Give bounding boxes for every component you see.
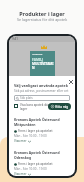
- staticText: APOTEKET: [32, 53, 43, 56]
- button[interactable]: Stäng: [67, 78, 74, 85]
- button[interactable]: [14, 104, 18, 108]
- button[interactable]: Visa mer: [14, 139, 31, 143]
- staticText: Sök plats: [20, 96, 33, 100]
- staticText: 9:41: [12, 37, 18, 41]
- staticText: Produkter i lager: [0, 10, 84, 17]
- staticText: Visa mer: [14, 172, 27, 176]
- staticText: Hitta mig: [55, 105, 69, 109]
- button[interactable]: Kronans Apotek Östersund Mittpunkten: [14, 117, 70, 143]
- staticText: FAMILJ: [32, 58, 43, 62]
- staticText: Se lagerstatus för ditt apotek: [0, 17, 84, 22]
- staticText: Kronans Apotek Östersund Odenskog: [14, 150, 70, 160]
- staticText: Visa mer: [14, 139, 27, 143]
- staticText: Sök på adress, postnummer eller ort: [14, 89, 69, 93]
- staticText: MULTIVITAMIN: [32, 62, 55, 70]
- staticText: Visa bara apotek där varan finns i lager: [20, 103, 67, 111]
- staticText: Finns i lager på apoteket: [18, 162, 53, 166]
- staticText: Mån - Sön 10:00 - 19:00: [14, 134, 47, 138]
- button[interactable]: Kronans Apotek Östersund Odenskog: [14, 150, 70, 176]
- staticText: Välj vanligast använda apotek: [14, 83, 68, 88]
- button[interactable]: Sök plats: [14, 95, 70, 101]
- button[interactable]: Visa mer: [14, 172, 31, 176]
- staticText: Kronans Apotek Östersund Mittpunkten: [14, 117, 70, 127]
- staticText: Mån - Sön 10:00 - 19:00: [14, 167, 47, 171]
- button[interactable]: Hitta mig: [48, 103, 71, 110]
- staticText: Finns i lager på apoteket: [18, 129, 53, 133]
